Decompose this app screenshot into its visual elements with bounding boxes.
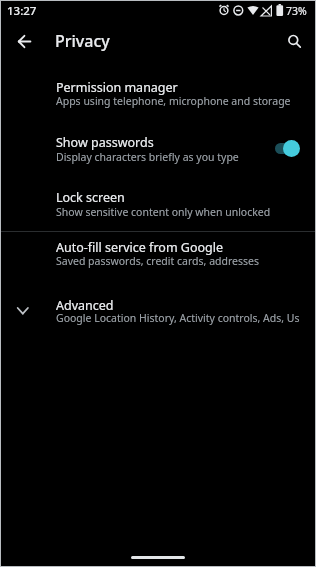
staticText: Show sensitive content only when unlocke…: [56, 205, 271, 219]
staticText: Auto-fill service from Google: [56, 239, 224, 256]
button[interactable]: Show passwords: [0, 117, 316, 173]
button[interactable]: [10, 27, 38, 55]
staticText: Saved passwords, credit cards, addresses: [56, 254, 259, 268]
button[interactable]: [281, 28, 309, 56]
button[interactable]: Lock screen: [0, 173, 316, 231]
staticText: Display characters briefly as you type: [56, 150, 239, 164]
button[interactable]: Permission manager: [0, 62, 316, 117]
staticText: 13:27: [7, 3, 37, 19]
button[interactable]: [275, 140, 300, 157]
staticText: Apps using telephone, microphone and sto…: [56, 94, 291, 108]
button[interactable]: Auto-fill service from Google: [0, 232, 316, 286]
staticText: 73%: [286, 4, 307, 18]
staticText: Lock screen: [56, 189, 125, 206]
button[interactable]: Advanced: [0, 286, 316, 346]
staticText: Privacy: [55, 30, 110, 52]
button[interactable]: [131, 556, 185, 559]
staticText: Show passwords: [56, 134, 154, 151]
staticText: Google Location History, Activity contro…: [56, 311, 300, 325]
staticText: Advanced: [56, 297, 114, 314]
staticText: Permission manager: [56, 79, 178, 96]
